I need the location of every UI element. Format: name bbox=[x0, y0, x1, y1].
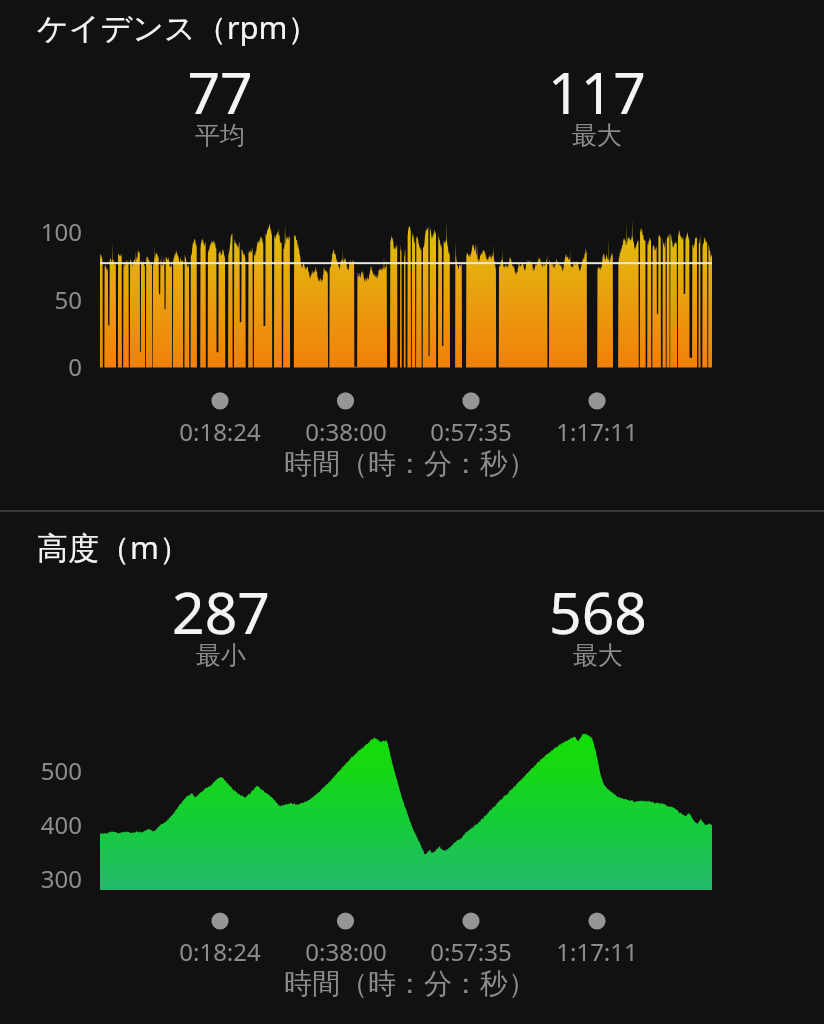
staticText: 568 bbox=[478, 573, 718, 651]
staticText: 最大 bbox=[507, 120, 687, 151]
staticText: 77 bbox=[100, 53, 340, 131]
staticText: 時間（時：分：秒） bbox=[210, 966, 610, 1001]
staticText: 0:38:00 bbox=[276, 935, 416, 968]
staticText: 100 bbox=[18, 215, 82, 248]
staticText: 0:18:24 bbox=[150, 935, 290, 968]
staticText: 0 bbox=[18, 350, 82, 383]
staticText: 最小 bbox=[131, 640, 311, 671]
staticText: 0:57:35 bbox=[401, 935, 541, 968]
staticText: 0:57:35 bbox=[401, 415, 541, 448]
staticText: 0:38:00 bbox=[276, 415, 416, 448]
staticText: 117 bbox=[477, 53, 717, 131]
staticText: 時間（時：分：秒） bbox=[210, 446, 610, 481]
staticText: ケイデンス（rpm） bbox=[37, 6, 319, 48]
staticText: 1:17:11 bbox=[527, 935, 667, 968]
staticText: 最大 bbox=[508, 640, 688, 671]
staticText: 0:18:24 bbox=[150, 415, 290, 448]
staticText: 400 bbox=[18, 808, 82, 841]
staticText: 287 bbox=[101, 573, 341, 651]
staticText: 平均 bbox=[130, 120, 310, 151]
staticText: 500 bbox=[18, 754, 82, 787]
staticText: 1:17:11 bbox=[527, 415, 667, 448]
staticText: 50 bbox=[18, 283, 82, 316]
staticText: 300 bbox=[18, 862, 82, 895]
staticText: 高度（m） bbox=[37, 526, 190, 568]
